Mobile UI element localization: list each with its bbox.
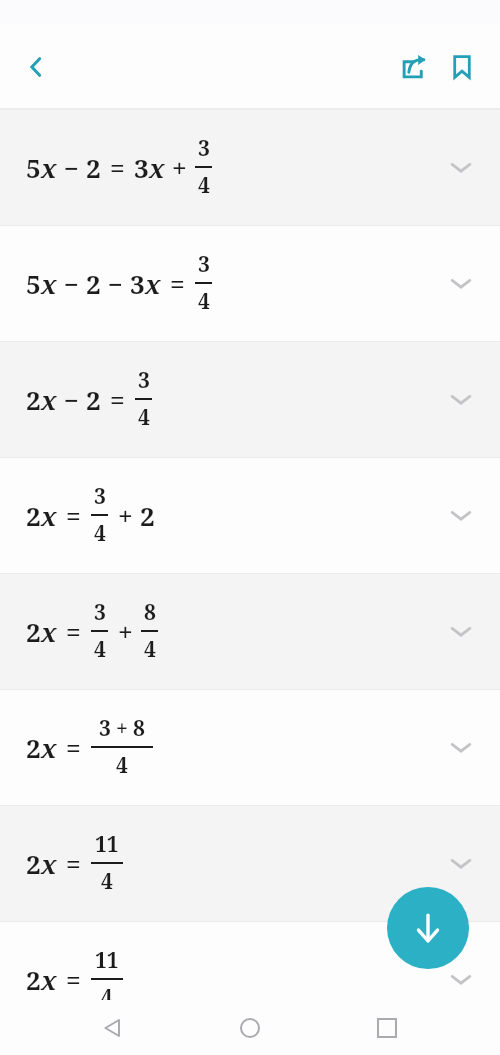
staticText: 3 [138, 366, 150, 395]
staticText: 2 [86, 266, 101, 301]
staticText: 2 [26, 846, 41, 881]
staticText: = [66, 730, 81, 765]
staticText: 2 [26, 730, 41, 765]
staticText: + [116, 714, 128, 743]
staticText: 3 [198, 250, 210, 279]
staticText: x [41, 730, 57, 765]
button[interactable]: Share [390, 43, 438, 91]
staticText: x [41, 382, 57, 417]
button[interactable]: 2 [0, 341, 500, 457]
button[interactable]: 2 [0, 457, 500, 573]
button[interactable]: 5 [0, 225, 500, 341]
staticText: 8 [144, 598, 156, 627]
staticText: 2 [140, 498, 155, 533]
button[interactable]: Bookmark [438, 43, 486, 91]
staticText: − [108, 266, 123, 301]
staticText: 2 [26, 614, 41, 649]
staticText: = [110, 382, 125, 417]
button[interactable]: 2 [0, 805, 500, 921]
staticText: − [64, 150, 79, 185]
staticText: x [145, 266, 161, 301]
staticText: x [41, 498, 57, 533]
staticText: 2 [26, 498, 41, 533]
staticText: x [41, 150, 57, 185]
staticText: 4 [116, 751, 128, 780]
staticText: 3 [130, 266, 145, 301]
staticText: = [110, 150, 125, 185]
staticText: 4 [198, 287, 210, 316]
staticText: x [41, 614, 57, 649]
staticText: 3 [94, 482, 106, 511]
staticText: 5 [26, 266, 41, 301]
staticText: = [66, 498, 81, 533]
staticText: 5 [26, 150, 41, 185]
staticText: 11 [95, 830, 119, 859]
staticText: + [172, 150, 187, 185]
staticText: 11 [95, 946, 119, 975]
button[interactable]: Back [89, 1004, 137, 1052]
staticText: 2 [26, 962, 41, 997]
staticText: x [149, 150, 165, 185]
staticText: = [66, 614, 81, 649]
button[interactable]: Home [226, 1004, 274, 1052]
staticText: x [41, 266, 57, 301]
staticText: = [66, 962, 81, 997]
staticText: 3 [99, 714, 111, 743]
staticText: 3 [134, 150, 149, 185]
staticText: − [64, 266, 79, 301]
staticText: x [41, 962, 57, 997]
staticText: 4 [94, 635, 106, 664]
button[interactable]: Recents [363, 1004, 411, 1052]
staticText: 4 [144, 635, 156, 664]
staticText: 4 [198, 171, 210, 200]
staticText: 8 [133, 714, 145, 743]
staticText: 2 [26, 382, 41, 417]
staticText: x [41, 846, 57, 881]
button[interactable]: Back [14, 45, 58, 89]
button[interactable]: 2 [0, 921, 500, 1037]
button[interactable]: 2 [0, 689, 500, 805]
staticText: = [170, 266, 185, 301]
staticText: 4 [138, 403, 150, 432]
staticText: 2 [86, 150, 101, 185]
staticText: + [118, 614, 133, 649]
staticText: 4 [101, 867, 113, 896]
staticText: 3 [94, 598, 106, 627]
staticText: − [64, 382, 79, 417]
button[interactable]: 5 [0, 109, 500, 225]
button[interactable]: 2 [0, 573, 500, 689]
staticText: 2 [86, 382, 101, 417]
staticText: 4 [94, 519, 106, 548]
staticText: = [66, 846, 81, 881]
staticText: 3 [198, 134, 210, 163]
staticText: + [118, 498, 133, 533]
staticText: 4 [101, 983, 113, 1012]
button[interactable]: Scroll to bottom [387, 887, 469, 969]
